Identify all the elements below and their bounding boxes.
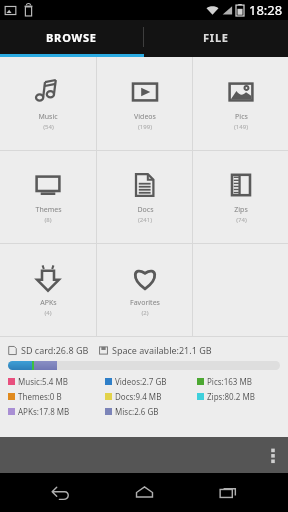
staticText: APKs:17.8 MB [18, 406, 70, 417]
staticText: Music [38, 112, 58, 122]
staticText: Misc:2.6 GB [115, 406, 159, 417]
staticText: (149) [234, 123, 248, 131]
staticText: Themes [35, 205, 62, 215]
staticText: Zips:80.2 MB [207, 391, 255, 402]
staticText: 18:28 [249, 1, 283, 19]
staticText: (74) [236, 216, 247, 224]
button[interactable]: Back [36, 473, 84, 512]
staticText: Pics:163 MB [207, 376, 252, 387]
staticText: SD card:26.8 GB [21, 344, 89, 356]
button[interactable]: FILE [144, 20, 288, 54]
staticText: (2) [141, 309, 149, 317]
staticText: BROWSE [46, 30, 97, 45]
button[interactable]: Themes [0, 151, 96, 243]
staticText: Space available:21.1 GB [112, 344, 212, 356]
button[interactable]: APKs [0, 244, 96, 336]
button[interactable]: Videos [97, 57, 192, 150]
button[interactable]: Recent apps [204, 473, 252, 512]
staticText: Zips [234, 205, 248, 215]
staticText: (241) [138, 216, 152, 224]
staticText: APKs [40, 298, 57, 308]
staticText: Music:5.4 MB [18, 376, 68, 387]
staticText: Pics [235, 112, 248, 122]
staticText: FILE [203, 30, 229, 45]
button[interactable]: Home [120, 473, 168, 512]
button[interactable]: Docs [97, 151, 192, 243]
staticText: (54) [43, 123, 54, 131]
button[interactable]: Pics [193, 57, 288, 150]
staticText: Themes:0 B [18, 391, 62, 402]
staticText: Videos:2.7 GB [115, 376, 167, 387]
button[interactable]: BROWSE [0, 20, 143, 54]
staticText: Docs:9.4 MB [115, 391, 162, 402]
staticText: Favorites [130, 298, 160, 308]
staticText: (199) [138, 123, 152, 131]
staticText: Videos [134, 112, 156, 122]
button[interactable]: More options [258, 437, 288, 473]
button[interactable]: Music [0, 57, 96, 150]
staticText: Docs [137, 205, 154, 215]
button[interactable]: Favorites [97, 244, 192, 336]
staticText: (4) [44, 309, 52, 317]
staticText: (8) [44, 216, 52, 224]
button[interactable]: Zips [193, 151, 288, 243]
